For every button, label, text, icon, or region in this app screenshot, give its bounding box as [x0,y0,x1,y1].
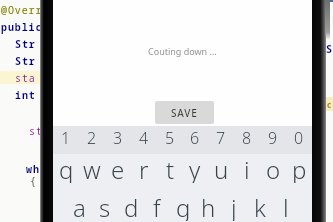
staticText: d [124,191,139,221]
staticText: q [59,153,74,183]
staticText: 5 [165,127,175,149]
staticText: 4 [139,127,149,149]
staticText: Couting down ... [148,45,217,57]
button[interactable]: l [273,191,299,221]
button[interactable]: e [105,153,131,183]
button[interactable]: 7 [208,123,234,153]
staticText: { [30,174,37,188]
staticText: 3 [113,127,123,149]
button[interactable]: SAVE [155,101,214,124]
staticText: @Overri [1,3,50,17]
staticText: r [139,153,149,183]
staticText: l [283,191,289,221]
staticText: Str [15,54,36,68]
staticText: y [189,153,201,183]
staticText: public [1,20,43,34]
button[interactable]: 1 [53,123,79,153]
staticText: 0 [294,127,304,149]
staticText: k [254,191,266,221]
button[interactable]: 0 [286,123,312,153]
button[interactable]: 3 [105,123,131,153]
button[interactable]: t [157,153,183,183]
button[interactable]: 6 [182,123,208,153]
button[interactable]: h [195,191,221,221]
button[interactable]: 9 [260,123,286,153]
staticText: e [111,153,125,183]
staticText: w [83,153,101,183]
staticText: i [244,153,250,183]
button[interactable]: f [144,191,170,221]
button[interactable]: 4 [131,123,157,153]
staticText: f [153,191,161,221]
button[interactable]: s [92,191,118,221]
staticText: 1 [61,127,71,149]
staticText: s [99,191,111,221]
button[interactable]: i [234,153,260,183]
staticText: sta [15,71,36,85]
staticText: j [231,191,237,221]
button[interactable]: g [170,191,196,221]
staticText: S [326,42,333,56]
button[interactable]: 8 [234,123,260,153]
staticText: h [201,191,216,221]
staticText: p [292,153,307,183]
staticText: 7 [216,127,226,149]
button[interactable]: r [131,153,157,183]
staticText: a [73,191,86,221]
staticText: g [176,191,191,221]
button[interactable]: p [286,153,312,183]
staticText: whi [26,162,47,176]
staticText: Str [15,37,36,51]
staticText: o [266,153,281,183]
button[interactable]: o [260,153,286,183]
staticText: t [166,153,175,183]
button[interactable]: y [182,153,208,183]
button[interactable]: 5 [157,123,183,153]
staticText: c [327,99,332,110]
button[interactable]: j [221,191,247,221]
staticText: 2 [87,127,97,149]
staticText: u [214,153,229,183]
button[interactable]: d [118,191,144,221]
button[interactable]: 2 [79,123,105,153]
button[interactable]: k [247,191,273,221]
staticText: 8 [242,127,252,149]
staticText: int [15,88,36,102]
button[interactable]: u [208,153,234,183]
button[interactable]: a [66,191,92,221]
staticText: SAVE [171,106,198,120]
button[interactable]: w [79,153,105,183]
staticText: 6 [190,127,200,149]
staticText: 9 [268,127,278,149]
button[interactable]: q [53,153,79,183]
staticText: st [29,124,43,138]
